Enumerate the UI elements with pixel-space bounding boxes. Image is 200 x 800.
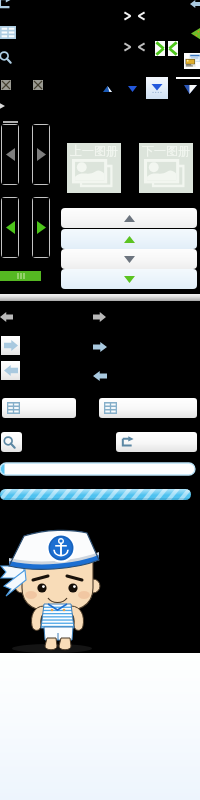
button[interactable]: Scroll up <box>61 208 197 228</box>
button[interactable]: Next <box>123 11 132 21</box>
button[interactable]: Back <box>1 361 20 380</box>
button[interactable]: Albums <box>184 53 200 69</box>
button[interactable]: Broken image <box>1 80 11 90</box>
button[interactable]: 下一图册 <box>139 143 193 193</box>
button[interactable]: Progress <box>0 271 41 281</box>
staticText: 下一图册 <box>142 143 190 158</box>
button[interactable]: Previous <box>137 11 146 21</box>
staticText: 上一图册 <box>70 143 118 158</box>
button[interactable]: Next page <box>155 41 165 56</box>
button[interactable]: Scroll up <box>61 229 197 249</box>
button[interactable]: Dropdown <box>146 77 168 99</box>
button[interactable]: Share <box>0 0 12 10</box>
button[interactable]: Loading <box>0 489 191 500</box>
button[interactable]: Previous page <box>168 41 178 56</box>
button[interactable]: Next image <box>33 125 49 184</box>
button[interactable]: Share <box>116 432 197 452</box>
button[interactable]: Scroll down <box>61 269 197 289</box>
button[interactable]: Next image <box>33 198 49 257</box>
button[interactable]: Previous image <box>2 125 18 184</box>
button[interactable]: Search <box>1 432 22 452</box>
button[interactable]: 上一图册 <box>67 143 121 193</box>
button[interactable]: Progress <box>0 463 195 475</box>
button[interactable]: Table view <box>2 398 76 418</box>
button[interactable]: Scroll down <box>61 249 197 269</box>
button[interactable]: List view <box>99 398 197 418</box>
button[interactable]: Next <box>123 42 132 52</box>
button[interactable]: Broken image <box>33 80 43 90</box>
button[interactable]: Search <box>0 51 12 64</box>
button[interactable]: Table view <box>0 26 16 39</box>
button[interactable]: Previous <box>137 42 146 52</box>
button[interactable]: Forward <box>1 336 20 355</box>
button[interactable]: Previous image <box>2 198 18 257</box>
